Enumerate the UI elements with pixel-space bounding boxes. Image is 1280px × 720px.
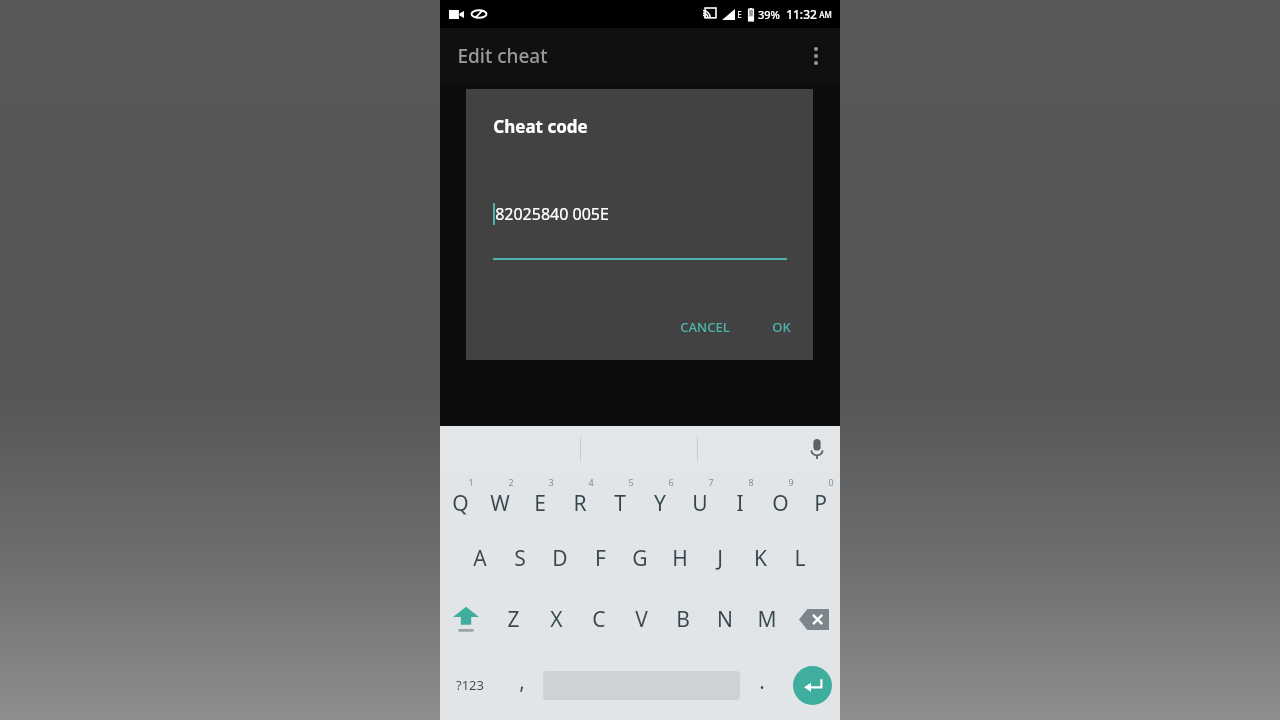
- staticText: 5: [628, 476, 634, 488]
- staticText: AM: [819, 9, 832, 20]
- button[interactable]: Enter: [784, 650, 840, 720]
- staticText: M: [757, 605, 777, 634]
- staticText: Edit cheat: [457, 43, 548, 69]
- staticText: 39%: [758, 7, 780, 22]
- staticText: N: [717, 605, 733, 634]
- staticText: R: [573, 489, 587, 518]
- staticText: U: [692, 489, 708, 518]
- button[interactable]: W: [480, 472, 520, 528]
- button[interactable]: L: [780, 528, 820, 589]
- staticText: 2: [508, 476, 514, 488]
- staticText: V: [635, 605, 648, 634]
- button[interactable]: R: [560, 472, 600, 528]
- staticText: 1: [468, 476, 474, 488]
- button[interactable]: H: [660, 528, 700, 589]
- button[interactable]: F: [580, 528, 620, 589]
- button[interactable]: S: [500, 528, 540, 589]
- staticText: J: [717, 544, 723, 573]
- button[interactable]: B: [662, 589, 704, 650]
- staticText: P: [814, 489, 827, 518]
- staticText: Q: [452, 489, 469, 518]
- button[interactable]: D: [540, 528, 580, 589]
- button[interactable]: V: [620, 589, 662, 650]
- staticText: 0: [828, 476, 834, 488]
- button[interactable]: More options: [792, 32, 840, 80]
- button[interactable]: .: [740, 650, 784, 720]
- staticText: 8: [748, 476, 754, 488]
- staticText: ?123: [456, 676, 484, 694]
- button[interactable]: Shift: [440, 589, 492, 650]
- staticText: 4: [588, 476, 594, 488]
- staticText: .: [759, 667, 765, 696]
- button[interactable]: I: [720, 472, 760, 528]
- button[interactable]: ?123: [440, 650, 500, 720]
- staticText: Y: [654, 489, 666, 518]
- button[interactable]: U: [680, 472, 720, 528]
- button[interactable]: J: [700, 528, 740, 589]
- button[interactable]: X: [535, 589, 578, 650]
- button[interactable]: O: [760, 472, 800, 528]
- button[interactable]: E: [520, 472, 560, 528]
- staticText: CANCEL: [680, 318, 730, 336]
- staticText: I: [736, 489, 744, 518]
- staticText: 82025840 005E: [495, 203, 609, 225]
- staticText: Cheat code: [493, 115, 588, 138]
- staticText: K: [754, 544, 767, 573]
- button[interactable]: M: [746, 589, 788, 650]
- button[interactable]: ,: [500, 650, 543, 720]
- button[interactable]: Q: [440, 472, 480, 528]
- button[interactable]: T: [600, 472, 640, 528]
- button[interactable]: G: [620, 528, 660, 589]
- staticText: F: [595, 544, 606, 573]
- staticText: A: [473, 544, 487, 573]
- staticText: ,: [519, 667, 525, 696]
- staticText: B: [676, 605, 690, 634]
- staticText: W: [490, 489, 510, 518]
- staticText: 9: [788, 476, 794, 488]
- staticText: 3: [548, 476, 554, 488]
- staticText: D: [552, 544, 568, 573]
- button[interactable]: P: [800, 472, 840, 528]
- staticText: E: [534, 489, 546, 518]
- button[interactable]: C: [578, 589, 620, 650]
- staticText: Z: [507, 605, 520, 634]
- staticText: O: [772, 489, 789, 518]
- staticText: C: [592, 605, 606, 634]
- button[interactable]: OK: [762, 310, 801, 344]
- button[interactable]: A: [460, 528, 500, 589]
- staticText: E: [737, 9, 742, 20]
- staticText: T: [614, 489, 626, 518]
- button[interactable]: K: [740, 528, 780, 589]
- staticText: G: [632, 544, 648, 573]
- staticText: X: [550, 605, 563, 634]
- button[interactable]: Voice input: [794, 426, 840, 472]
- staticText: OK: [772, 318, 791, 336]
- button[interactable]: Z: [492, 589, 535, 650]
- staticText: L: [794, 544, 806, 573]
- staticText: 6: [668, 476, 674, 488]
- button[interactable]: Backspace: [788, 589, 840, 650]
- staticText: S: [514, 544, 526, 573]
- button[interactable]: Y: [640, 472, 680, 528]
- button[interactable]: Space: [543, 650, 740, 720]
- button[interactable]: CANCEL: [670, 310, 740, 344]
- staticText: 7: [708, 476, 714, 488]
- staticText: H: [672, 544, 688, 573]
- button[interactable]: N: [704, 589, 746, 650]
- staticText: 11:32: [786, 6, 817, 22]
